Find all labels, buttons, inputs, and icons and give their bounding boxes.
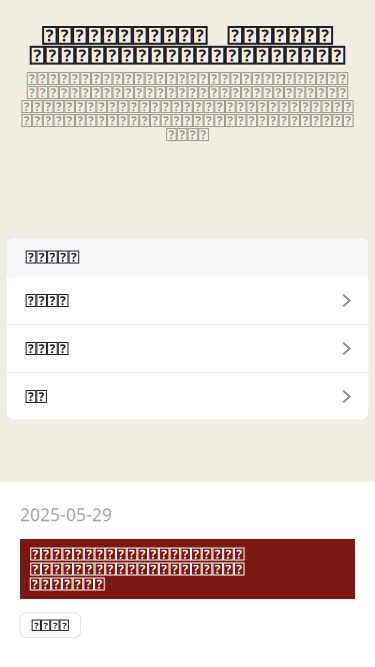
staticText: ? xyxy=(49,292,55,308)
staticText: ? xyxy=(281,99,287,114)
staticText: ? xyxy=(78,45,86,66)
staticText: ? xyxy=(99,99,105,114)
staticText: ? xyxy=(152,113,158,128)
staticText: ? xyxy=(33,546,39,562)
button[interactable]: ? xyxy=(6,325,369,372)
staticText: ? xyxy=(246,25,254,46)
button[interactable]: ? xyxy=(20,613,80,637)
staticText: ? xyxy=(249,113,255,128)
staticText: ? xyxy=(179,85,185,100)
staticText: ? xyxy=(77,99,83,114)
staticText: ? xyxy=(48,45,56,66)
staticText: ? xyxy=(265,71,271,86)
staticText: ? xyxy=(334,113,340,128)
staticText: ? xyxy=(142,99,148,114)
staticText: ? xyxy=(172,546,178,562)
staticText: ? xyxy=(313,113,319,128)
staticText: ? xyxy=(67,113,73,128)
staticText: ? xyxy=(163,99,169,114)
staticText: ? xyxy=(86,561,92,577)
staticText: ? xyxy=(39,340,45,356)
staticText: ? xyxy=(61,25,69,46)
staticText: ? xyxy=(211,85,217,100)
staticText: ? xyxy=(34,113,40,128)
staticText: ? xyxy=(265,85,271,100)
staticText: ? xyxy=(39,292,45,308)
staticText: ? xyxy=(32,576,38,592)
staticText: ? xyxy=(238,113,244,128)
staticText: ? xyxy=(161,561,167,577)
staticText: ? xyxy=(109,113,115,128)
staticText: ? xyxy=(93,45,101,66)
staticText: ? xyxy=(33,561,39,577)
staticText: ? xyxy=(61,71,67,86)
staticText: ? xyxy=(29,71,35,86)
staticText: ? xyxy=(83,71,89,86)
staticText: ? xyxy=(60,292,66,308)
staticText: ? xyxy=(179,127,185,142)
staticText: ? xyxy=(129,561,135,577)
staticText: ? xyxy=(286,71,292,86)
staticText: ? xyxy=(61,85,67,100)
staticText: ? xyxy=(28,388,34,404)
staticText: ? xyxy=(163,113,169,128)
staticText: ? xyxy=(43,561,49,577)
staticText: ? xyxy=(211,71,217,86)
staticText: ? xyxy=(227,99,233,114)
staticText: ? xyxy=(93,85,99,100)
staticText: ? xyxy=(225,546,231,562)
staticText: ? xyxy=(120,99,126,114)
staticText: ? xyxy=(131,113,137,128)
staticText: ? xyxy=(198,45,206,66)
staticText: ? xyxy=(45,113,51,128)
staticText: ? xyxy=(258,45,266,66)
staticText: ? xyxy=(136,85,142,100)
staticText: ? xyxy=(306,25,314,46)
staticText: ? xyxy=(136,71,142,86)
staticText: ? xyxy=(88,99,94,114)
staticText: ? xyxy=(172,561,178,577)
staticText: ? xyxy=(71,249,77,265)
staticText: ? xyxy=(345,99,351,114)
staticText: ? xyxy=(106,25,114,46)
staticText: ? xyxy=(158,85,164,100)
staticText: ? xyxy=(297,85,303,100)
staticText: ? xyxy=(236,561,242,577)
staticText: ? xyxy=(270,99,276,114)
staticText: ? xyxy=(340,71,346,86)
staticText: ? xyxy=(118,546,124,562)
staticText: ? xyxy=(118,561,124,577)
staticText: ? xyxy=(108,546,114,562)
staticText: ? xyxy=(233,85,239,100)
staticText: ? xyxy=(115,85,121,100)
staticText: ? xyxy=(65,546,71,562)
staticText: ? xyxy=(215,561,221,577)
staticText: ? xyxy=(86,576,92,592)
staticText: ? xyxy=(93,71,99,86)
staticText: ? xyxy=(150,546,156,562)
staticText: ? xyxy=(324,113,330,128)
staticText: ? xyxy=(28,292,34,308)
staticText: ? xyxy=(334,99,340,114)
staticText: ? xyxy=(233,71,239,86)
staticText: ? xyxy=(201,71,207,86)
staticText: ? xyxy=(318,45,326,66)
staticText: ? xyxy=(183,561,189,577)
staticText: ? xyxy=(72,71,78,86)
button[interactable]: ? xyxy=(6,373,369,420)
staticText: ? xyxy=(33,45,41,66)
staticText: ? xyxy=(28,340,34,356)
staticText: ? xyxy=(183,546,189,562)
staticText: ? xyxy=(243,85,249,100)
button[interactable]: ? xyxy=(6,277,369,324)
staticText: ? xyxy=(64,576,70,592)
staticText: ? xyxy=(190,71,196,86)
staticText: ? xyxy=(109,99,115,114)
staticText: ? xyxy=(333,45,341,66)
staticText: ? xyxy=(56,113,62,128)
staticText: ? xyxy=(340,85,346,100)
staticText: ? xyxy=(152,99,158,114)
staticText: ? xyxy=(297,71,303,86)
staticText: ? xyxy=(53,619,57,631)
staticText: ? xyxy=(24,99,30,114)
